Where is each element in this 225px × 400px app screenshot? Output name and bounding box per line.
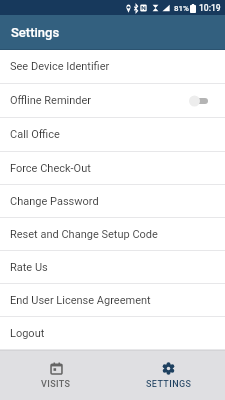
staticText: Change Password — [10, 195, 99, 208]
staticText: Call Office — [10, 128, 60, 141]
button[interactable]: Reset and Change Setup Code — [0, 218, 225, 250]
other: Visits — [50, 362, 63, 375]
button[interactable]: Rate Us — [0, 251, 225, 283]
button[interactable]: Call Office — [0, 118, 225, 151]
button[interactable]: Offline Reminder toggle — [189, 94, 208, 108]
button[interactable]: Visits — [0, 351, 112, 400]
button[interactable]: Settings — [112, 351, 225, 400]
button[interactable]: Offline Reminder — [0, 84, 225, 117]
staticText: Offline Reminder — [10, 94, 92, 107]
staticText: Logout — [10, 327, 45, 340]
staticText: Rate Us — [10, 261, 48, 274]
other: Settings — [162, 362, 175, 375]
staticText: 81% — [174, 4, 189, 13]
staticText: 10:19 — [199, 3, 221, 13]
staticText: Settings — [11, 25, 60, 40]
staticText: SETTINGS — [146, 379, 192, 390]
button[interactable]: Change Password — [0, 185, 225, 217]
button[interactable]: Force Check-Out — [0, 152, 225, 184]
staticText: Reset and Change Setup Code — [10, 228, 158, 241]
button[interactable]: End User License Agreement — [0, 284, 225, 316]
staticText: Force Check-Out — [10, 162, 91, 175]
staticText: End User License Agreement — [10, 294, 151, 307]
button[interactable]: Logout — [0, 317, 225, 349]
button[interactable]: See Device Identifier — [0, 50, 225, 83]
staticText: VISITS — [41, 379, 71, 390]
staticText: See Device Identifier — [10, 60, 110, 73]
